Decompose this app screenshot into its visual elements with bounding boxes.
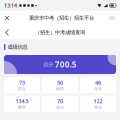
- staticText: 成绩信息: [8, 44, 28, 50]
- staticText: 重庆市中考（招生）招生平台: [29, 15, 94, 21]
- staticText: 73: [19, 79, 25, 86]
- staticText: 数学: [18, 105, 26, 110]
- button[interactable]: Close: [1, 11, 13, 25]
- staticText: 700.5: [55, 59, 77, 70]
- staticText: 134.5: [15, 98, 28, 105]
- staticText: 物理: [56, 86, 64, 91]
- staticText: 70: [57, 98, 63, 105]
- staticText: 化学: [94, 86, 102, 91]
- staticText: 13:14: [4, 2, 17, 9]
- staticText: 英语: [94, 105, 102, 110]
- button[interactable]: Back: [1, 25, 13, 40]
- staticText: 46: [95, 79, 101, 86]
- staticText: 道法: [56, 105, 64, 110]
- button[interactable]: More: [107, 11, 116, 25]
- staticText: 122: [93, 98, 102, 105]
- staticText: 语文: [18, 86, 26, 91]
- staticText: （招生）中考成绩查询: [35, 29, 85, 36]
- staticText: 总分: [43, 61, 53, 68]
- staticText: 50: [57, 79, 63, 86]
